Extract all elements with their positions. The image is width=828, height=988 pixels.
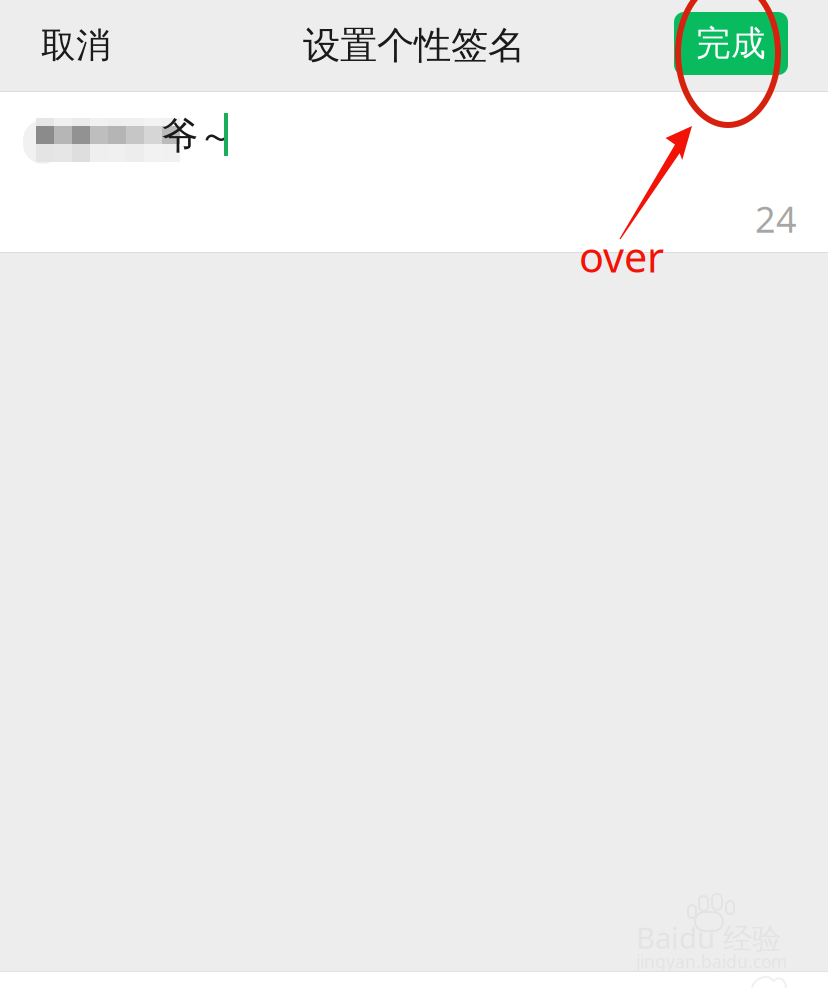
button[interactable]: Signature text field [0,92,828,252]
button[interactable]: 完成 [674,12,828,79]
staticText: over [579,229,664,284]
staticText: 24 [755,195,797,243]
staticText: 取消 [41,24,111,67]
button[interactable]: 取消 [0,0,171,91]
staticText: 完成 [696,22,766,65]
staticText: Baidu 经验 [636,918,781,957]
staticText: 爷～ [161,113,235,159]
staticText: 设置个性签名 [303,23,525,68]
staticText: jingyan.baidu.com [636,950,787,973]
